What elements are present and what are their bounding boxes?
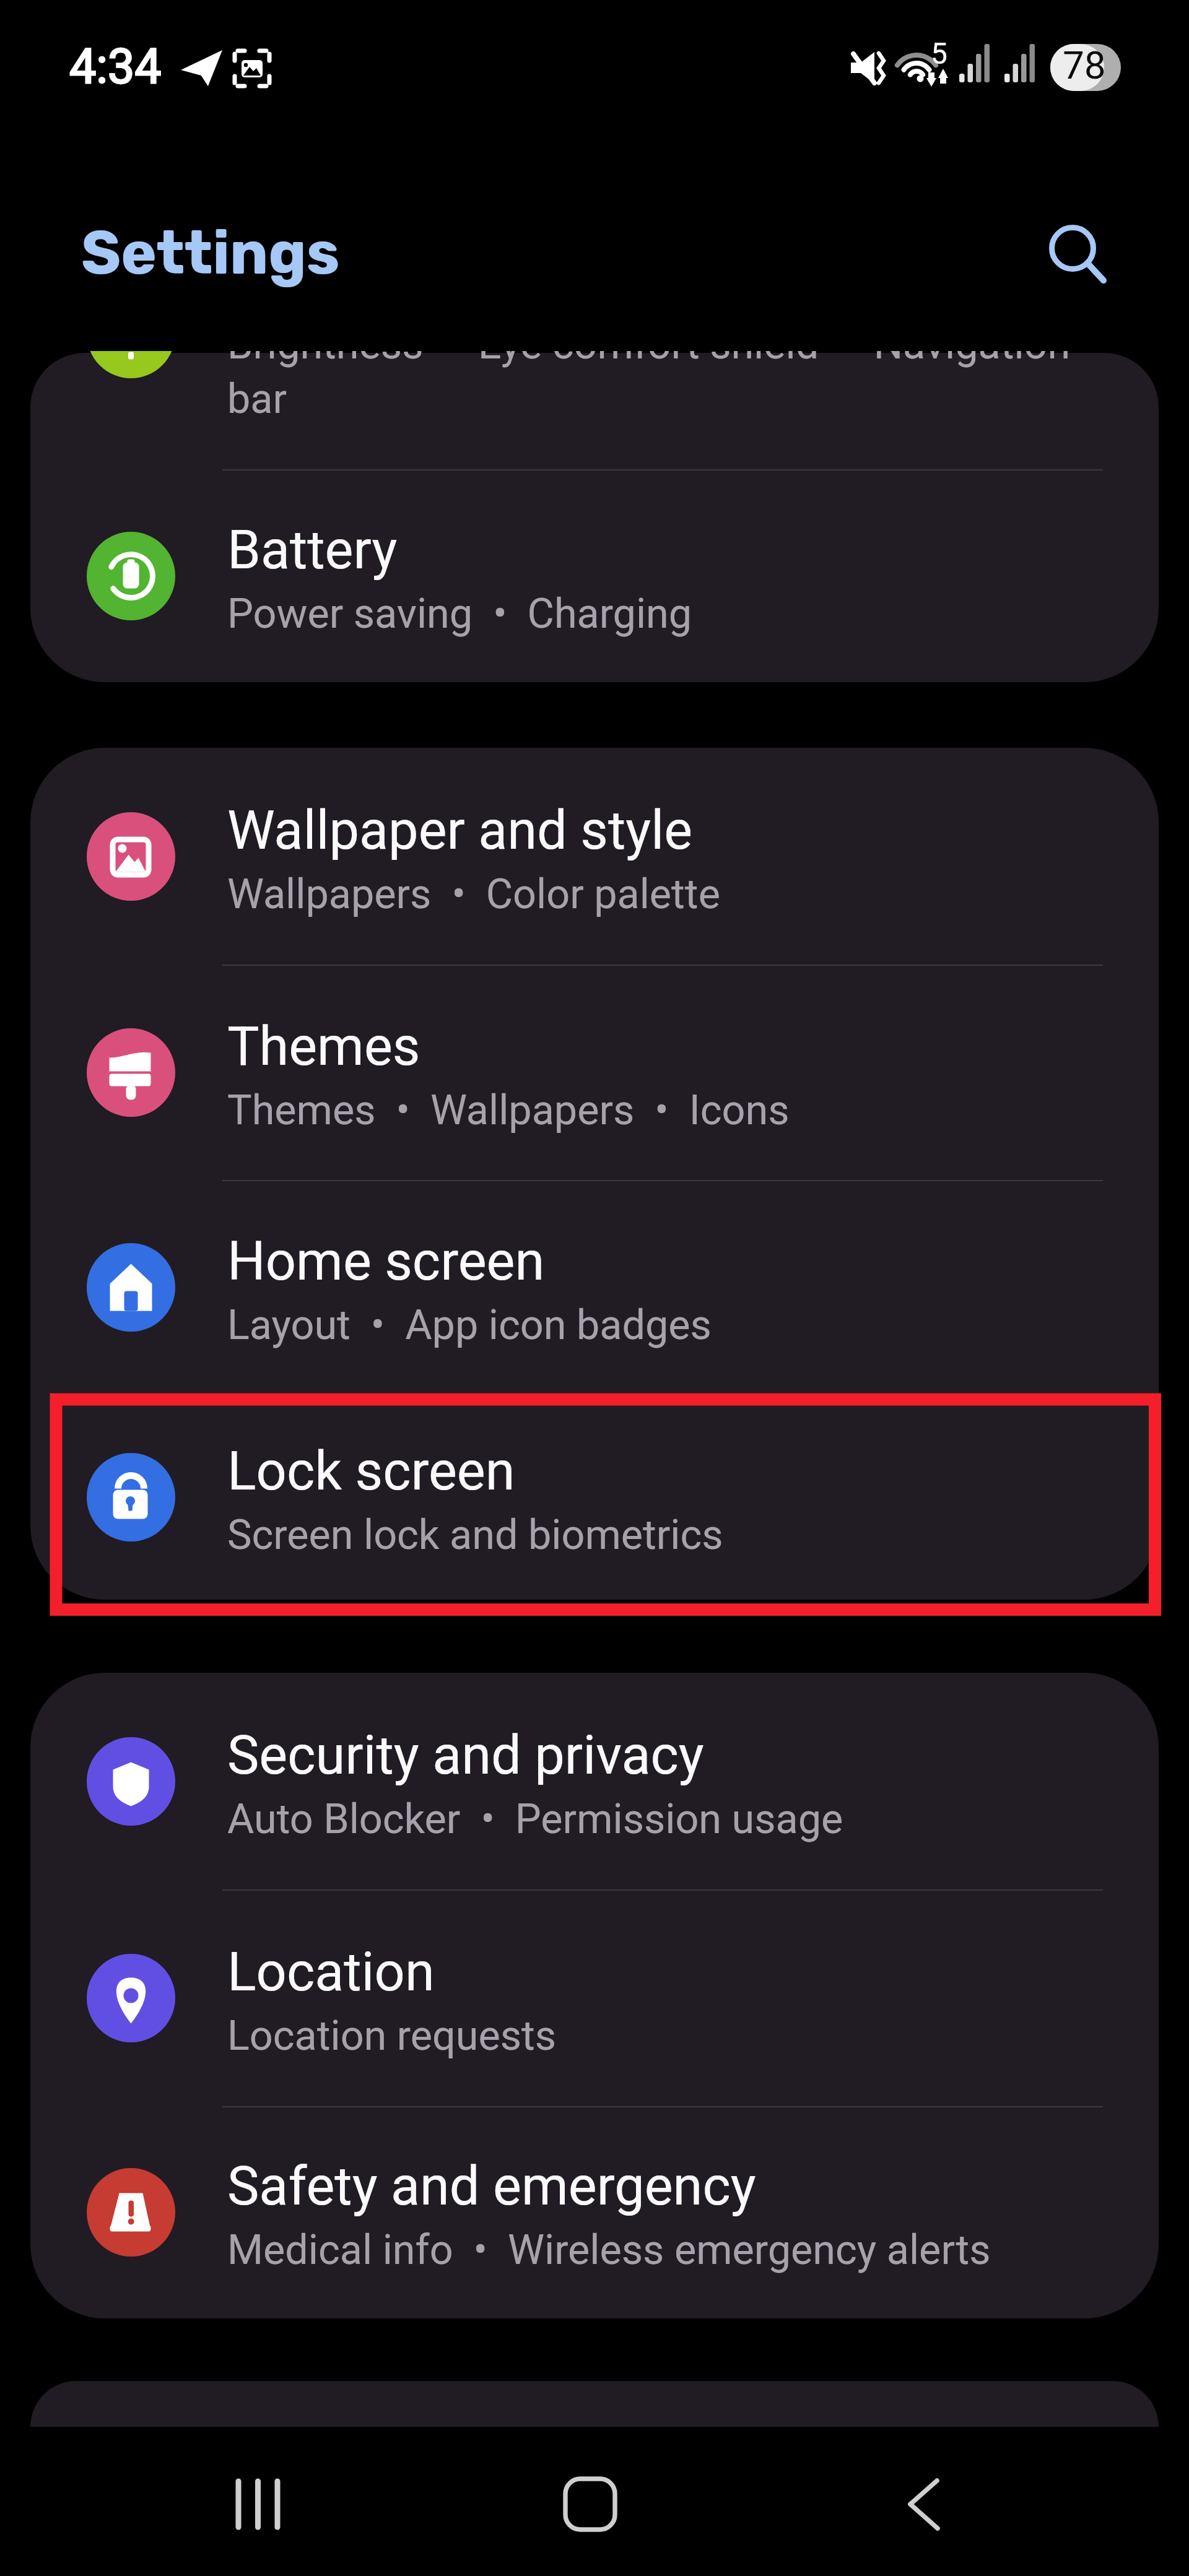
button[interactable]: Display [30, 199, 1159, 469]
staticText: Battery [227, 519, 1109, 581]
staticText: Lock screen [227, 1440, 1109, 1503]
button[interactable]: Home screen [30, 1180, 1159, 1395]
button[interactable]: Battery [30, 469, 1159, 682]
button[interactable]: Lock screen [30, 1395, 1159, 1600]
staticText: Themes • Wallpapers • Icons [227, 1086, 1109, 1134]
staticText: Auto Blocker • Permission usage [227, 1795, 1109, 1843]
button[interactable]: Back [867, 2445, 997, 2563]
button[interactable]: Safety and emergency [30, 2106, 1159, 2318]
staticText: Display [227, 249, 1109, 312]
staticText: Safety and emergency [227, 2155, 1109, 2218]
staticText: Layout • App icon badges [227, 1301, 1109, 1349]
button[interactable]: Recent apps [173, 2445, 303, 2563]
button[interactable]: Search [1023, 198, 1122, 297]
button[interactable]: Location [30, 1889, 1159, 2106]
staticText: Brightness • Eye comfort shield • Naviga… [227, 320, 1109, 423]
button[interactable]: Home [525, 2445, 655, 2563]
staticText: Security and privacy [227, 1724, 1109, 1787]
staticText: Wallpapers • Color palette [227, 870, 1109, 918]
staticText: Wallpaper and style [227, 799, 1109, 862]
staticText: Location requests [227, 2011, 1109, 2060]
button[interactable]: Security and privacy [30, 1673, 1159, 1889]
staticText: Location [227, 1941, 1109, 2003]
staticText: Screen lock and biometrics [227, 1511, 1109, 1559]
staticText: Medical info • Wireless emergency alerts [227, 2226, 1109, 2274]
button[interactable]: Themes [30, 965, 1159, 1180]
staticText: Settings [81, 217, 340, 288]
staticText: Power saving • Charging [227, 589, 1109, 638]
staticText: 4:34 [69, 39, 162, 95]
staticText: Themes [227, 1015, 1109, 1078]
staticText: 5 [931, 36, 947, 71]
staticText: 78 [1063, 43, 1106, 88]
button[interactable]: Wallpaper and style [30, 748, 1159, 965]
staticText: Home screen [227, 1230, 1109, 1293]
